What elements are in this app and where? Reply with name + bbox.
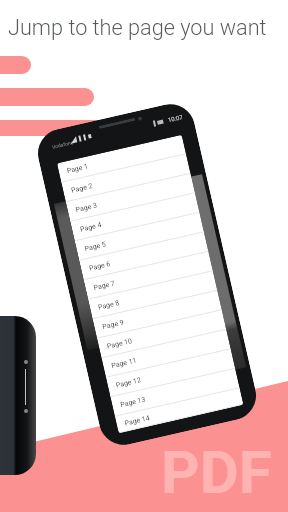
staticText: Page 13: [120, 395, 147, 409]
button[interactable]: Page 10: [97, 310, 226, 358]
button[interactable]: Page 13: [110, 369, 240, 417]
button[interactable]: Page 12: [106, 349, 235, 397]
button[interactable]: Page 1: [57, 135, 186, 183]
button[interactable]: Page 5: [75, 213, 204, 261]
staticText: Page 12: [115, 376, 142, 390]
button[interactable]: Page 2: [61, 154, 191, 202]
staticText: Page 6: [88, 260, 112, 273]
staticText: Page 8: [97, 299, 120, 312]
button[interactable]: Page 7: [84, 252, 213, 300]
button[interactable]: Page 14: [115, 388, 243, 433]
staticText: Page 5: [84, 240, 107, 253]
button[interactable]: Page 11: [102, 330, 231, 378]
button[interactable]: Page 4: [70, 193, 199, 241]
staticText: Page 1: [66, 162, 89, 175]
staticText: Page 11: [111, 356, 138, 370]
staticText: PDF: [161, 437, 272, 507]
staticText: Page 3: [75, 201, 98, 214]
button[interactable]: Page 9: [93, 291, 222, 339]
staticText: Page 4: [79, 221, 103, 234]
staticText: Jump to the page you want: [8, 15, 267, 40]
button[interactable]: Page 6: [79, 232, 208, 280]
staticText: Page 9: [102, 318, 125, 331]
staticText: Page 14: [124, 414, 151, 428]
button[interactable]: Page 3: [66, 174, 195, 222]
staticText: Page 10: [106, 337, 133, 351]
staticText: Vodafone: [51, 139, 74, 150]
staticText: Page 7: [93, 279, 116, 292]
staticText: 10:07: [167, 113, 183, 123]
button[interactable]: Page 8: [88, 271, 217, 319]
staticText: Page 2: [70, 182, 94, 195]
